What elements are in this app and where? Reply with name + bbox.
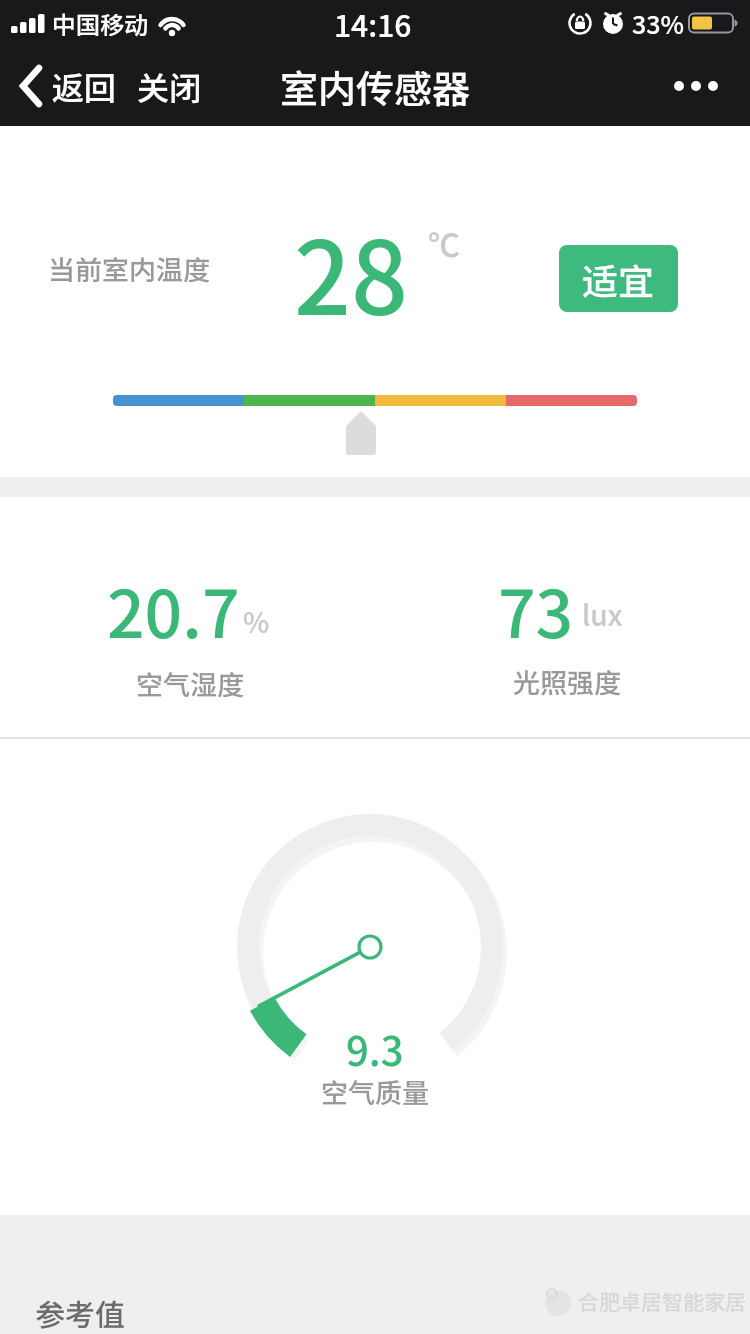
button[interactable]: 返回 xyxy=(52,63,117,109)
staticText: lux xyxy=(582,594,623,635)
staticText: 室内传感器 xyxy=(280,59,471,114)
staticText: 20.7 xyxy=(107,561,240,657)
staticText: % xyxy=(243,601,270,642)
button[interactable]: 关闭 xyxy=(137,63,202,109)
staticText: 9.3 xyxy=(346,1020,404,1078)
staticText: 空气质量 xyxy=(321,1072,429,1111)
staticText: 空气湿度 xyxy=(136,664,244,703)
staticText: 适宜 xyxy=(582,253,655,305)
staticText: 33% xyxy=(632,5,684,41)
staticText: 光照强度 xyxy=(513,662,621,701)
staticText: 中国移动 xyxy=(52,6,148,41)
button[interactable] xyxy=(18,64,44,108)
staticText: 73 xyxy=(498,561,574,657)
staticText: 合肥卓居智能家居 xyxy=(578,1286,746,1316)
button[interactable]: 适宜 xyxy=(559,245,678,312)
staticText: 14:16 xyxy=(334,2,412,45)
staticText: 28 xyxy=(294,199,408,344)
button[interactable] xyxy=(672,76,722,96)
staticText: 当前室内温度 xyxy=(48,249,210,288)
staticText: 参考值 xyxy=(35,1291,125,1334)
staticText: ℃ xyxy=(428,220,461,266)
